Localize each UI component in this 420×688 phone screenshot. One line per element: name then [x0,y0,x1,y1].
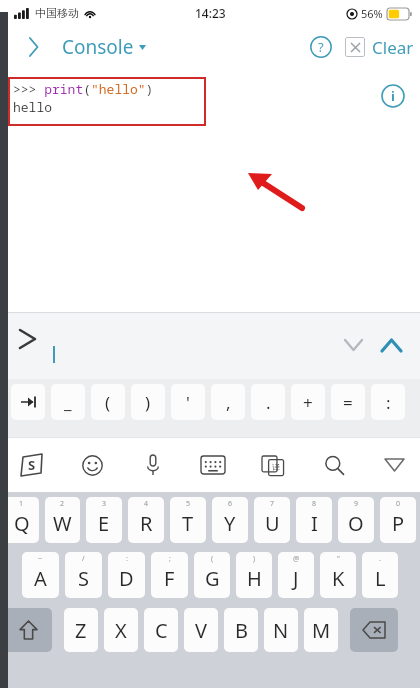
staticText: A [34,565,47,592]
button[interactable]: ( [91,384,125,420]
button[interactable]: 6 [212,497,248,543]
staticText: 1 [19,499,24,509]
button[interactable]: 3 [86,497,122,543]
staticText: : [126,554,128,564]
button[interactable]: 8 [296,497,332,543]
button[interactable] [11,384,45,420]
staticText: L [375,565,386,592]
button[interactable]: Help [305,31,337,63]
button[interactable]: ) [131,384,165,420]
staticText: >>> print("hello") [13,80,154,98]
staticText: E [98,510,110,537]
button[interactable]: . [251,384,285,420]
button[interactable]: Previous [338,330,368,360]
staticText: M [312,617,331,644]
staticText: S [78,565,89,592]
staticText: Z [75,617,87,644]
staticText: X [115,617,127,644]
button[interactable]: 4 [128,497,164,543]
staticText: : [386,391,391,414]
staticText: 8 [312,499,317,509]
staticText: 4 [144,499,149,509]
staticText: + [303,391,313,414]
staticText: P [392,510,405,537]
button[interactable]: ' [171,384,205,420]
button[interactable]: 9 [338,497,374,543]
button[interactable]: Shift [4,608,52,652]
staticText: W [53,510,72,537]
button[interactable]: _ [51,384,85,420]
button[interactable]: . [362,552,398,598]
staticText: F [164,565,175,592]
button[interactable]: Z [64,608,98,652]
button[interactable]: Search [316,447,352,483]
staticText: G [205,565,220,592]
button[interactable]: B [224,608,258,652]
button[interactable]: 0 [380,497,416,543]
button[interactable]: ) [236,552,272,598]
button[interactable]: = [331,384,365,420]
staticText: " [337,554,340,564]
staticText: U [265,510,280,537]
button[interactable]: ( [194,552,230,598]
button[interactable]: Next [376,330,406,360]
staticText: Q [14,510,30,537]
button[interactable]: : [371,384,405,420]
staticText: Y [224,510,236,537]
staticText: ( [105,391,111,414]
staticText: D [119,565,134,592]
button[interactable]: ; [151,552,188,598]
staticText: = [343,391,353,414]
staticText: I [311,510,318,537]
staticText: . [379,554,381,564]
staticText: J [293,565,299,592]
staticText: ? [318,38,324,56]
button[interactable]: Input method [14,447,50,483]
button[interactable]: : [108,552,145,598]
button[interactable]: Delete [350,608,398,652]
staticText: V [195,617,207,644]
button[interactable]: Collapse keyboard [376,447,412,483]
staticText: @ [293,554,300,564]
staticText: 14:23 [195,5,226,21]
staticText: O [348,510,364,537]
button[interactable]: 1 [4,497,39,543]
button[interactable]: M [304,608,338,652]
staticText: 7 [270,499,275,509]
button[interactable]: / [65,552,102,598]
button[interactable]: Voice input [135,447,171,483]
button[interactable]: 2 [45,497,80,543]
button[interactable]: N [264,608,298,652]
staticText: Console [62,34,134,60]
staticText: K [332,565,345,592]
staticText: 3 [102,499,107,509]
button[interactable]: + [291,384,325,420]
button[interactable]: @ [278,552,314,598]
button[interactable]: Keyboard layout [195,447,231,483]
button[interactable]: Close [345,37,365,57]
staticText: 9 [354,499,359,509]
staticText: 译 [272,462,280,472]
button[interactable]: Console [62,34,146,60]
staticText: N [273,617,289,644]
button[interactable]: Translate [255,447,291,483]
button[interactable]: X [104,608,138,652]
staticText: C [155,617,168,644]
staticText: S [28,456,36,474]
staticText: , [226,391,231,414]
button[interactable]: Back [20,34,46,60]
staticText: . [266,391,271,414]
staticText: _ [64,391,72,414]
button[interactable]: Info [380,83,406,109]
button[interactable]: ~ [22,552,59,598]
button[interactable]: 7 [254,497,290,543]
staticText: ; [169,554,171,564]
button[interactable]: V [184,608,218,652]
button[interactable]: " [320,552,356,598]
button[interactable]: , [211,384,245,420]
button[interactable]: Clear [372,36,418,59]
button[interactable]: 5 [170,497,206,543]
button[interactable]: C [144,608,178,652]
staticText: hello [13,98,53,116]
button[interactable]: Emoji [74,447,110,483]
